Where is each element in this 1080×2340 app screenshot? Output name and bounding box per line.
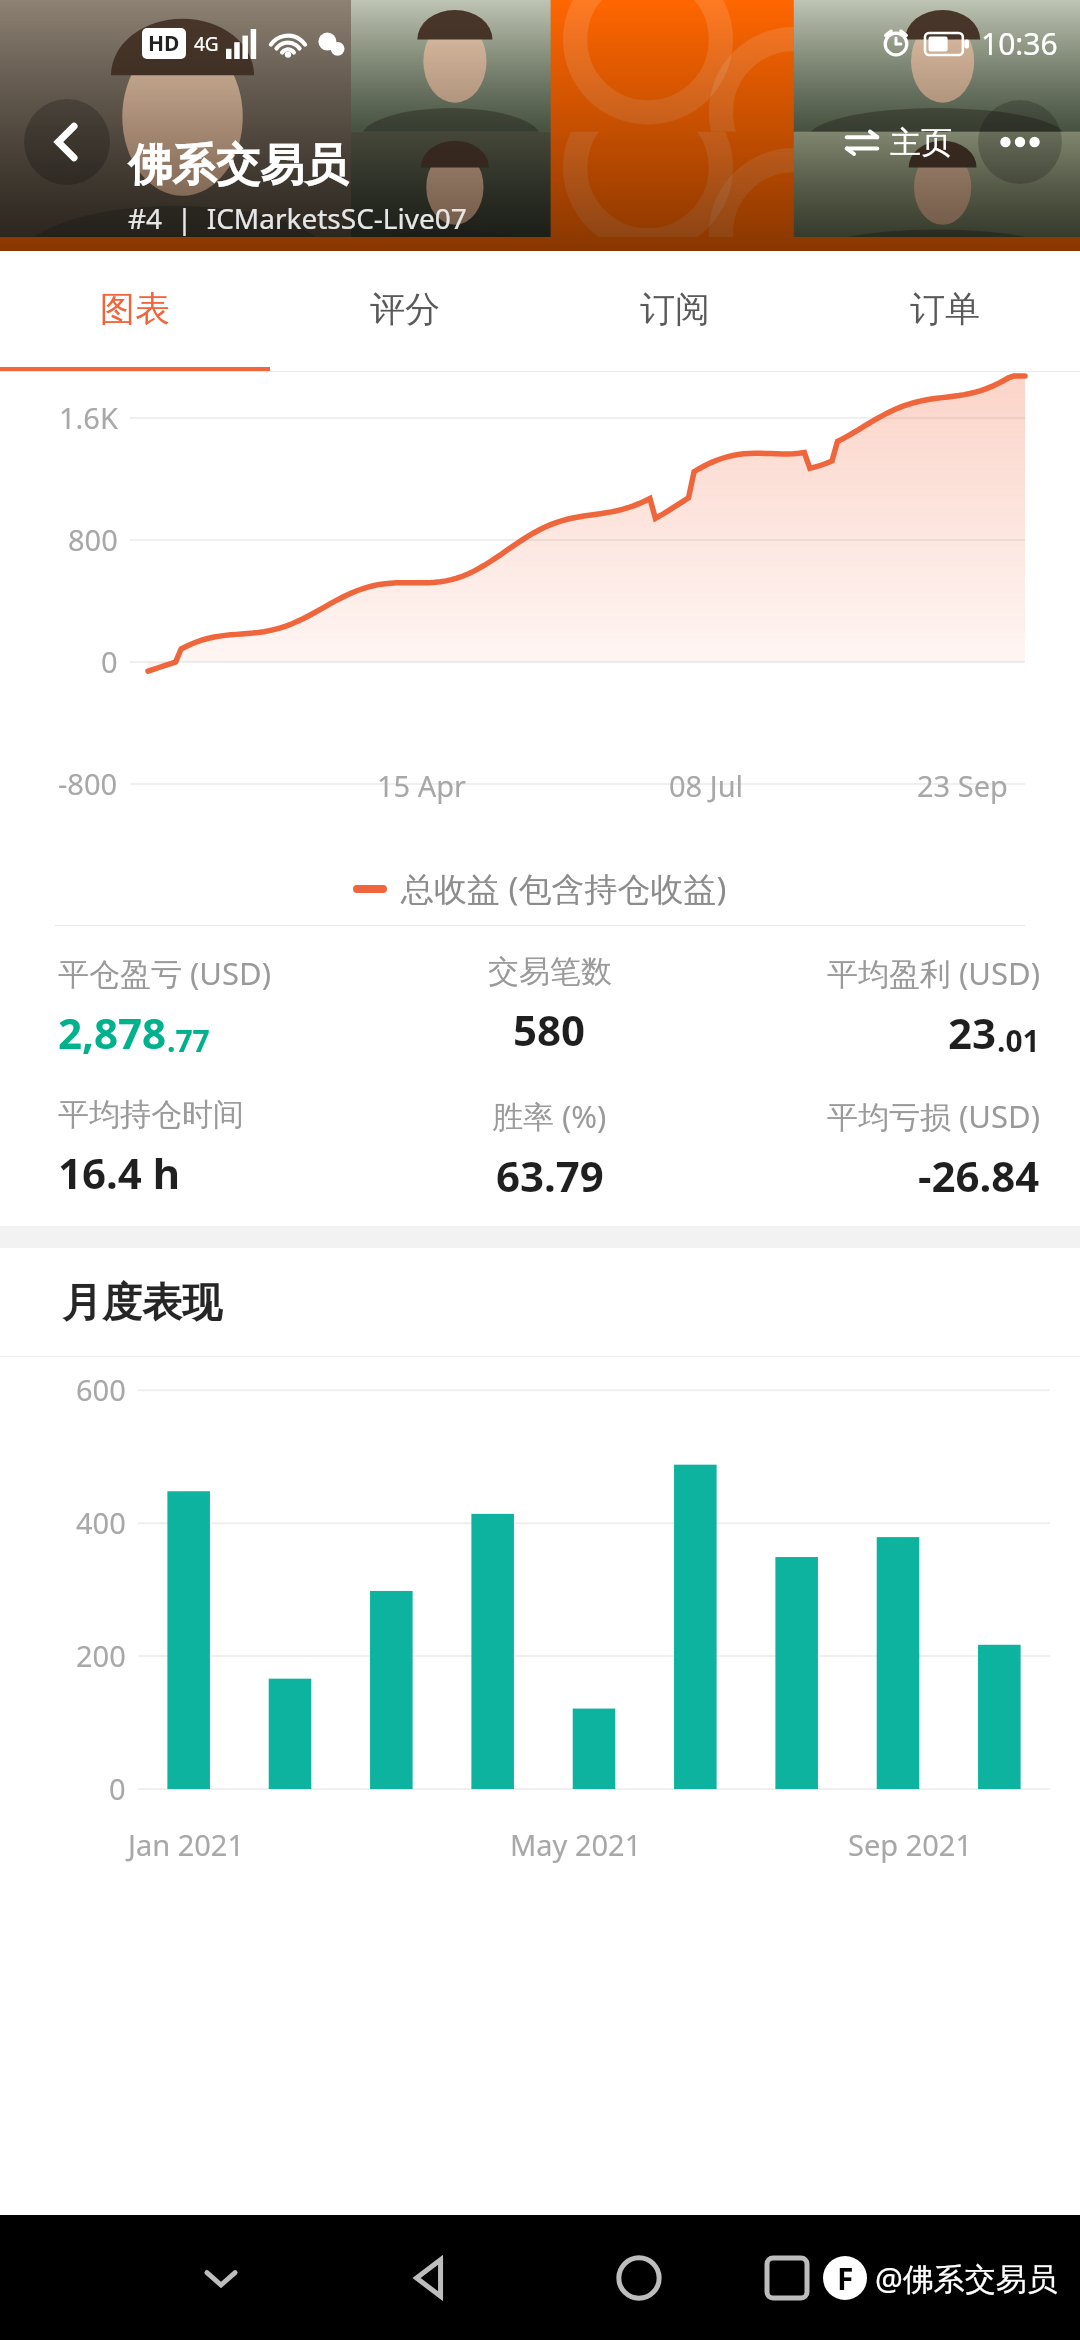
staticText: 4G <box>194 31 219 57</box>
staticText: -26.84 <box>918 1147 1040 1204</box>
staticText: F <box>837 2258 854 2299</box>
button[interactable]: Home <box>591 2230 687 2326</box>
staticText: 平均亏损 (USD) <box>827 1095 1040 1137</box>
staticText: 0 <box>109 1769 126 1808</box>
staticText: 0 <box>101 642 118 681</box>
staticText: 16.4 h <box>58 1144 181 1201</box>
staticText: 600 <box>76 1370 126 1409</box>
button[interactable]: Hide keyboard <box>173 2230 269 2326</box>
staticText: 评分 <box>370 287 440 331</box>
staticText: 图表 <box>100 287 170 331</box>
staticText: .77 <box>167 1020 210 1061</box>
staticText: 订单 <box>910 287 980 331</box>
staticText: 交易笔数 <box>488 952 612 991</box>
staticText: 08 Jul <box>669 766 744 805</box>
button[interactable]: 订阅 <box>540 251 810 367</box>
staticText: HD <box>148 29 180 58</box>
staticText: 23 <box>948 1004 997 1061</box>
button[interactable]: More options <box>978 100 1062 184</box>
staticText: 平均盈利 (USD) <box>827 952 1040 994</box>
staticText: Sep 2021 <box>848 1825 973 1864</box>
staticText: 主页 <box>890 123 952 162</box>
staticText: 平仓盈亏 (USD) <box>58 952 271 994</box>
staticText: 400 <box>76 1503 126 1542</box>
staticText: 月度表现 <box>62 1277 222 1327</box>
button[interactable]: 订单 <box>810 251 1080 367</box>
staticText: 580 <box>513 1001 586 1058</box>
button[interactable]: Back <box>24 99 110 185</box>
staticText: 800 <box>68 520 118 559</box>
staticText: 2,878 <box>58 1004 167 1061</box>
staticText: 总收益 (包含持仓收益) <box>401 866 727 911</box>
staticText: @佛系交易员 <box>875 2257 1058 2299</box>
staticText: 23 Sep <box>917 766 1008 805</box>
staticText: 200 <box>76 1636 126 1675</box>
staticText: #4 | ICMarketsSC-Live07 <box>128 199 467 237</box>
staticText: -800 <box>58 764 118 803</box>
staticText: 10:36 <box>981 23 1058 64</box>
staticText: .01 <box>997 1020 1040 1061</box>
staticText: 胜率 (%) <box>492 1095 607 1137</box>
button[interactable]: 评分 <box>270 251 540 367</box>
staticText: 佛系交易员 <box>128 138 348 193</box>
staticText: 1.6K <box>59 398 118 437</box>
staticText: 订阅 <box>640 287 710 331</box>
button[interactable]: 图表 <box>0 251 270 367</box>
staticText: May 2021 <box>510 1825 642 1864</box>
button[interactable]: 主页 <box>832 112 962 172</box>
staticText: 15 Apr <box>377 766 467 805</box>
staticText: 63.79 <box>496 1147 604 1204</box>
button[interactable]: Back <box>382 2230 478 2326</box>
staticText: Jan 2021 <box>128 1825 245 1864</box>
staticText: 平均持仓时间 <box>58 1095 244 1134</box>
